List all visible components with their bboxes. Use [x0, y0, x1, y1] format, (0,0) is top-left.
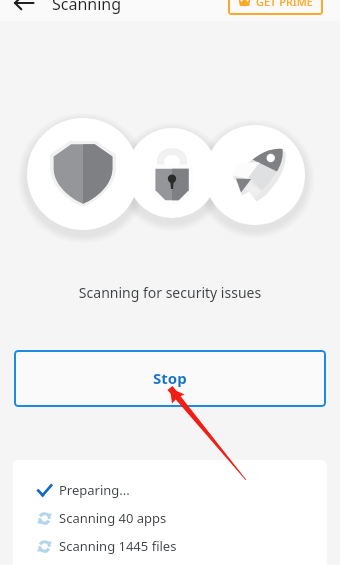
staticText: Scanning — [52, 0, 122, 15]
staticText: Preparing... — [59, 481, 130, 499]
staticText: GET PRIME — [256, 0, 313, 9]
button[interactable]: Preparing... — [37, 476, 327, 504]
button[interactable]: Back — [6, 0, 42, 36]
staticText: Stop — [153, 368, 187, 388]
button[interactable]: Stop — [14, 350, 326, 407]
button[interactable]: Scanning 40 apps — [37, 504, 327, 532]
button[interactable]: GET PRIME — [228, 0, 323, 15]
staticText: Scanning 40 apps — [59, 509, 167, 527]
staticText: Scanning 1445 files — [59, 537, 177, 555]
staticText: Scanning for security issues — [0, 283, 340, 302]
button[interactable]: Scanning 1445 files — [37, 532, 327, 560]
